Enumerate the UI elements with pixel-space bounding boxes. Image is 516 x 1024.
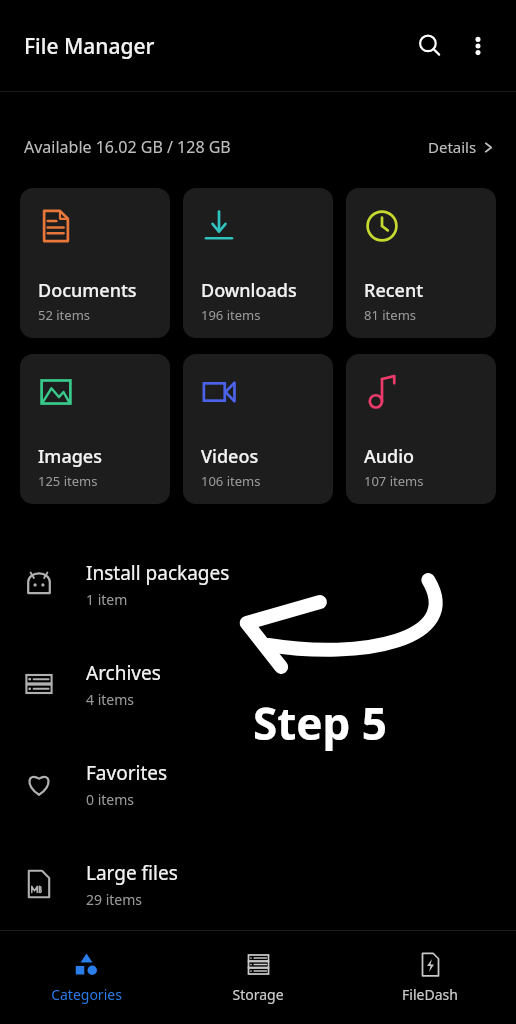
staticText: 1 item [86,590,128,609]
staticText: Install packages [86,560,230,586]
button[interactable]: Details [424,133,498,161]
staticText: FileDash [402,985,458,1004]
staticText: Available 16.02 GB / 128 GB [24,136,231,158]
staticText: Details [428,137,477,157]
staticText: 106 items [201,472,261,490]
staticText: Archives [86,660,161,686]
button[interactable]: Archives [0,634,516,734]
staticText: Step 5 [253,693,388,753]
staticText: Large files [86,860,178,886]
button[interactable]: FileDash [344,944,516,1012]
staticText: 81 items [364,306,417,324]
staticText: Audio [364,444,415,469]
staticText: Favorites [86,760,168,786]
staticText: Categories [51,985,122,1004]
staticText: Storage [232,985,284,1004]
button[interactable]: More options [454,22,502,70]
staticText: 4 items [86,690,135,709]
staticText: Recent [364,278,424,303]
button[interactable]: Downloads [183,188,333,338]
button[interactable]: Documents [20,188,170,338]
staticText: Videos [201,444,259,469]
staticText: 125 items [38,472,98,490]
staticText: 196 items [201,306,261,324]
button[interactable]: Videos [183,354,333,504]
staticText: 52 items [38,306,91,324]
button[interactable]: Recent [346,188,496,338]
staticText: 0 items [86,790,135,809]
staticText: File Manager [24,32,155,61]
staticText: 107 items [364,472,424,490]
button[interactable]: Audio [346,354,496,504]
button[interactable]: Install packages [0,534,516,634]
staticText: Downloads [201,278,297,303]
button[interactable]: Large files [0,834,516,934]
button[interactable]: Search [406,22,454,70]
button[interactable]: Images [20,354,170,504]
staticText: 29 items [86,890,143,909]
staticText: Documents [38,278,137,303]
staticText: Images [38,444,102,469]
button[interactable]: Storage [172,944,344,1012]
button[interactable]: Favorites [0,734,516,834]
button[interactable]: Categories [0,944,172,1012]
